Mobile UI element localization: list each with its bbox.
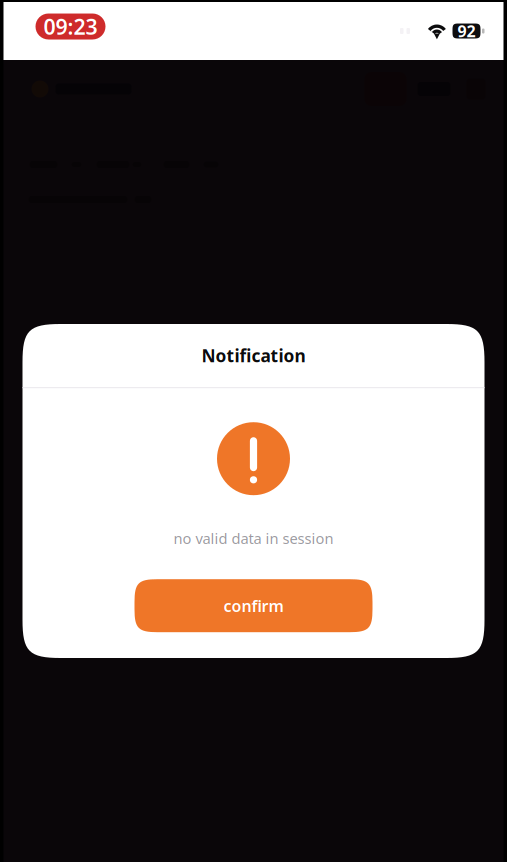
staticText: Notification [201,344,305,367]
button[interactable]: confirm [134,579,372,632]
staticText: 92 [457,20,475,42]
staticText: confirm [223,595,283,616]
staticText: 09:23 [43,12,97,41]
staticText: no valid data in session [173,528,333,548]
